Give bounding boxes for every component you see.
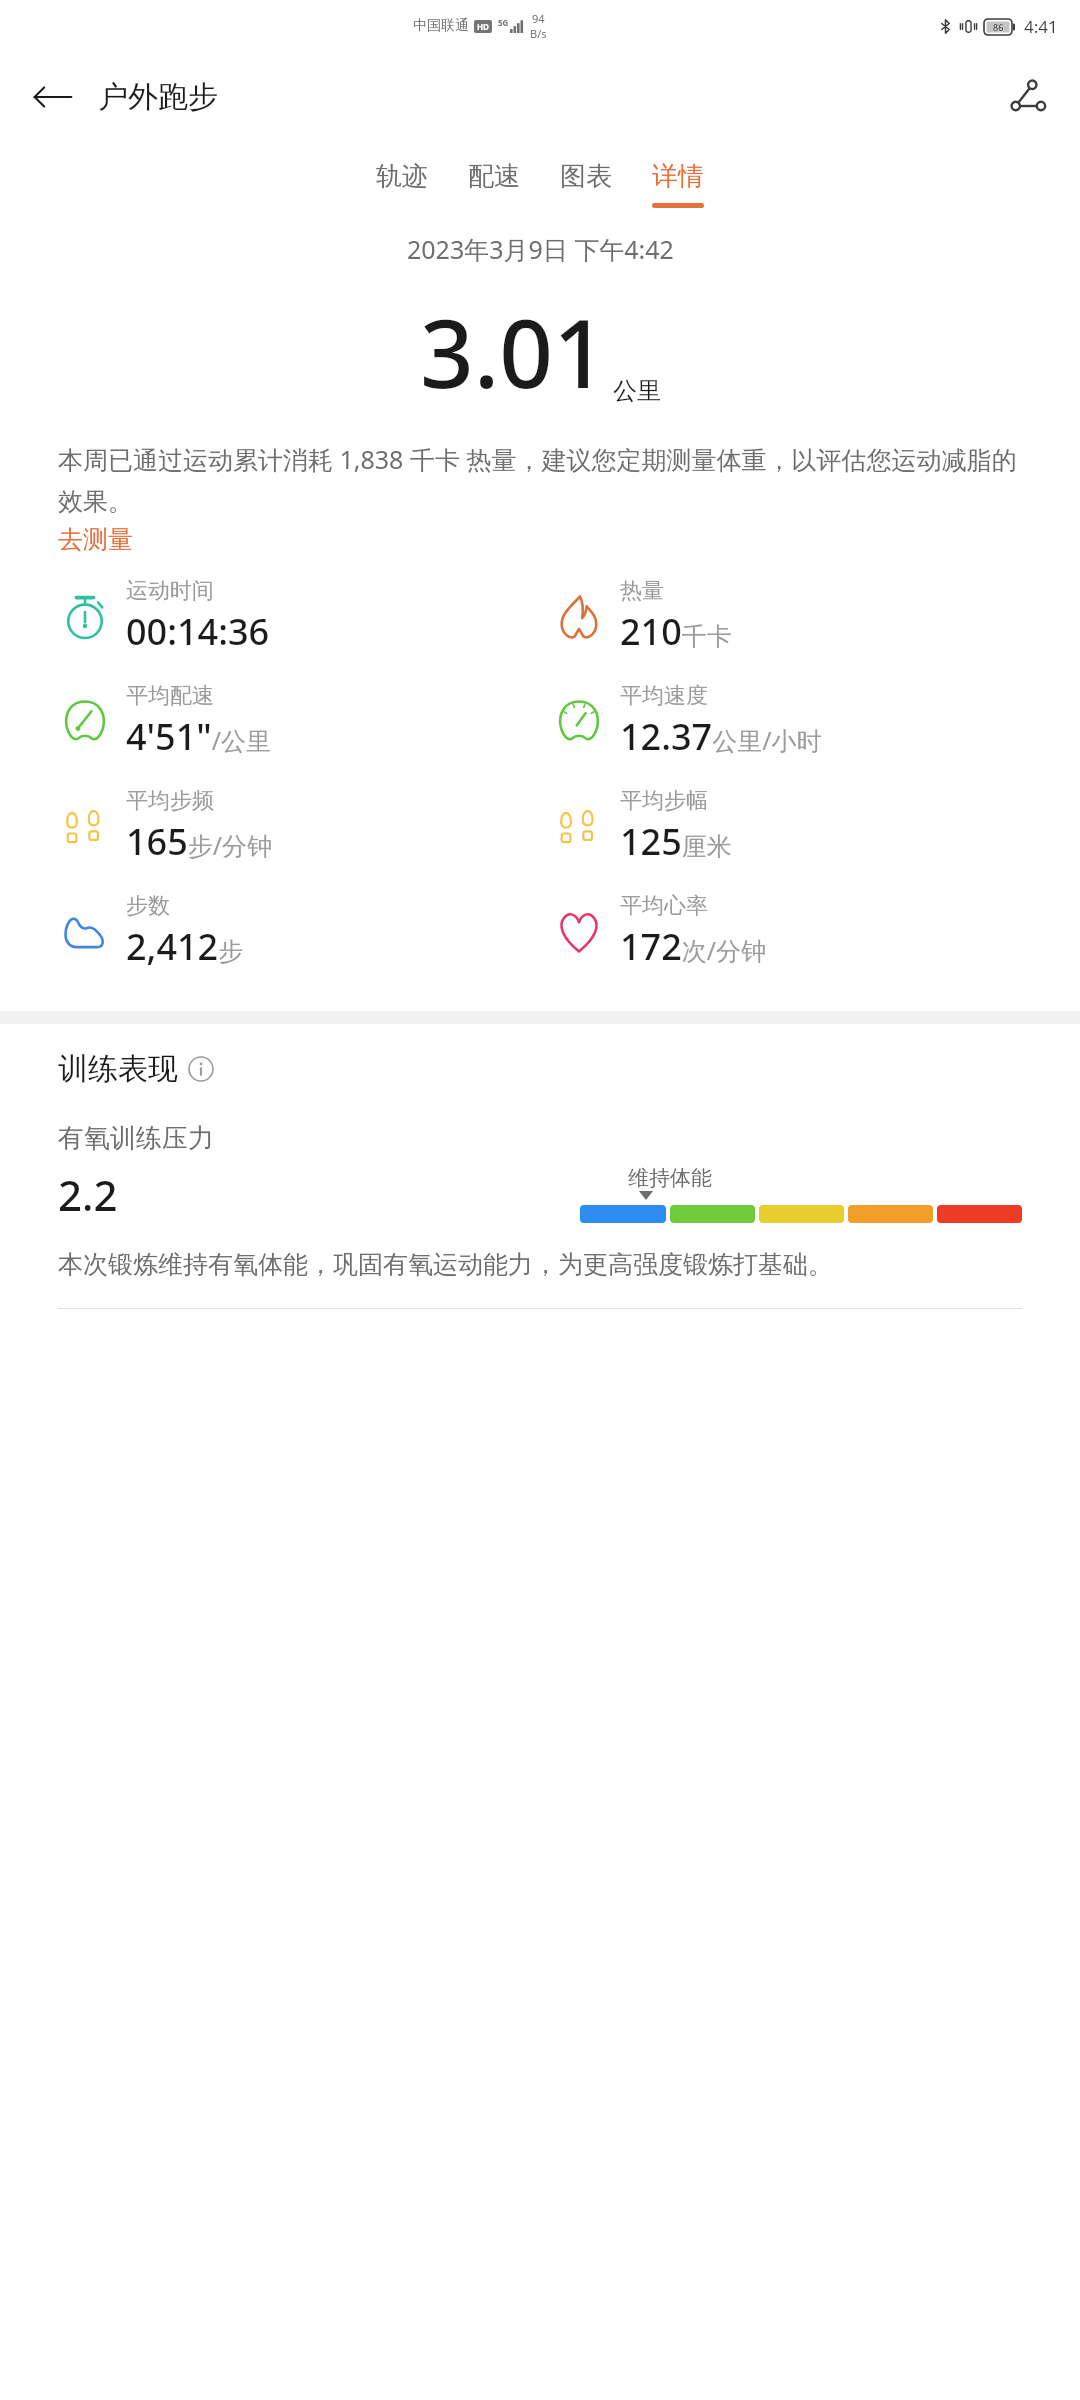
staticText: 维持体能 xyxy=(628,1165,712,1191)
staticText: 热量 xyxy=(620,577,664,605)
staticText: 5G xyxy=(498,17,509,28)
staticText: 公里 xyxy=(613,376,661,406)
staticText: 172次/分钟 xyxy=(620,922,767,971)
staticText: 00:14:36 xyxy=(126,607,270,656)
button[interactable]: 平均步频 xyxy=(0,787,540,866)
staticText: 图表 xyxy=(560,160,612,193)
staticText: 平均配速 xyxy=(126,682,214,710)
staticText: 3.01 xyxy=(420,288,607,416)
button[interactable]: 热量 xyxy=(540,577,1080,656)
staticText: 平均步幅 xyxy=(620,787,708,815)
button[interactable]: 图表 xyxy=(540,156,632,212)
button[interactable]: Share xyxy=(1000,69,1056,125)
button[interactable]: 平均配速 xyxy=(0,682,540,761)
staticText: 平均速度 xyxy=(620,682,708,710)
staticText: 86 xyxy=(993,21,1004,33)
staticText: 平均心率 xyxy=(620,892,708,920)
button[interactable]: 运动时间 xyxy=(0,577,540,656)
button[interactable]: 平均步幅 xyxy=(540,787,1080,866)
staticText: 12.37公里/小时 xyxy=(620,712,822,761)
staticText: 运动时间 xyxy=(126,577,214,605)
other: Info xyxy=(188,1056,214,1082)
button[interactable]: 平均心率 xyxy=(540,892,1080,971)
staticText: 4:41 xyxy=(1024,15,1058,38)
staticText: 2,412步 xyxy=(126,922,244,971)
staticText: 步数 xyxy=(126,892,170,920)
button[interactable]: 平均速度 xyxy=(540,682,1080,761)
button[interactable]: 训练表现 xyxy=(58,1050,214,1088)
staticText: 4'51"/公里 xyxy=(126,712,272,761)
staticText: 详情 xyxy=(652,160,704,193)
staticText: 中国联通 xyxy=(413,17,469,35)
staticText: 轨迹 xyxy=(376,160,428,193)
staticText: 2.2 xyxy=(58,1166,118,1223)
staticText: 本周已通过运动累计消耗 1,838 千卡 热量，建议您定期测量体重，以评估您运动… xyxy=(58,442,1022,518)
button[interactable]: 轨迹 xyxy=(356,156,448,212)
staticText: 去测量 xyxy=(58,524,133,555)
other: Back xyxy=(30,74,76,120)
staticText: B/s xyxy=(530,26,547,41)
staticText: 94 xyxy=(532,11,545,26)
button[interactable]: 配速 xyxy=(448,156,540,212)
staticText: HD xyxy=(477,21,489,32)
button[interactable]: 步数 xyxy=(0,892,540,971)
staticText: 有氧训练压力 xyxy=(58,1122,214,1155)
staticText: 本次锻炼维持有氧体能，巩固有氧运动能力，为更高强度锻炼打基础。 xyxy=(58,1249,833,1280)
staticText: 配速 xyxy=(468,160,520,193)
button[interactable]: 详情 xyxy=(632,156,724,212)
staticText: 训练表现 xyxy=(58,1050,178,1088)
button[interactable]: 去测量 xyxy=(58,524,133,555)
staticText: 户外跑步 xyxy=(98,78,218,116)
staticText: 210千卡 xyxy=(620,607,732,656)
button[interactable]: Back xyxy=(30,74,218,120)
staticText: 2023年3月9日 下午4:42 xyxy=(407,232,674,266)
staticText: 125厘米 xyxy=(620,817,732,866)
staticText: 165步/分钟 xyxy=(126,817,273,866)
staticText: 平均步频 xyxy=(126,787,214,815)
